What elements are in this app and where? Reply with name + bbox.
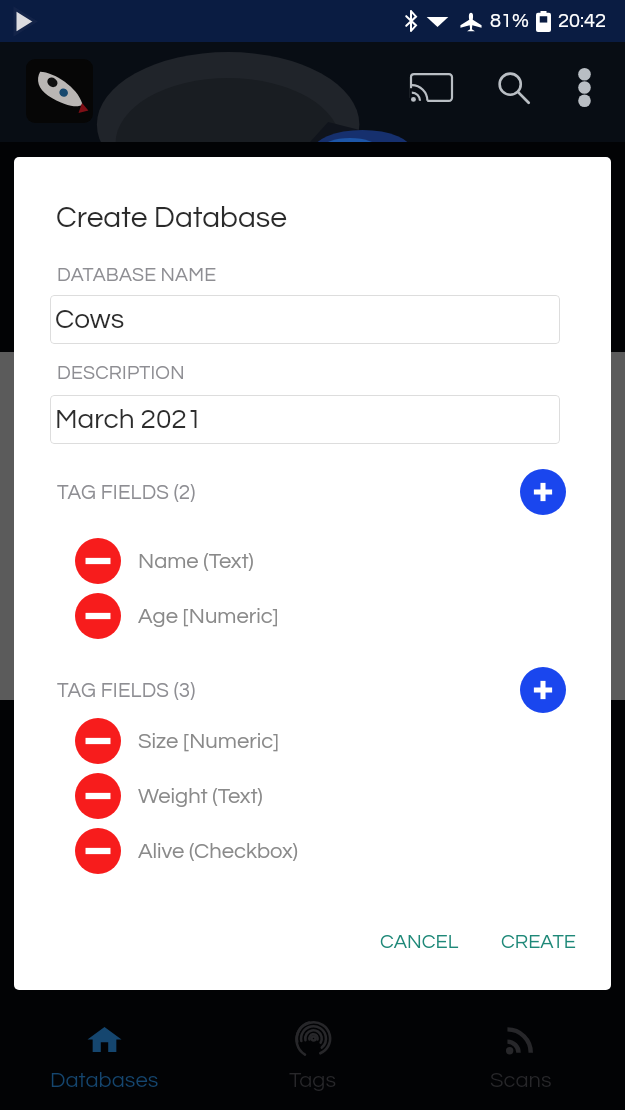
button[interactable]: Name (Text) bbox=[14, 536, 611, 586]
button[interactable]: Tags bbox=[209, 1000, 417, 1110]
staticText: 81% bbox=[490, 11, 529, 32]
staticText: DESCRIPTION bbox=[57, 363, 185, 383]
staticText: Scans bbox=[490, 1069, 552, 1092]
button[interactable]: Add tag field bbox=[520, 469, 566, 515]
staticText: CREATE bbox=[501, 932, 576, 953]
button[interactable]: Cows bbox=[50, 295, 560, 344]
button[interactable]: CREATE bbox=[487, 924, 590, 961]
button[interactable]: Databases bbox=[0, 1000, 209, 1110]
button[interactable]: Alive (Checkbox) bbox=[14, 826, 611, 876]
button[interactable]: Size [Numeric] bbox=[14, 716, 611, 766]
staticText: Age [Numeric] bbox=[138, 605, 279, 628]
button[interactable]: March 2021 bbox=[50, 395, 560, 444]
staticText: CANCEL bbox=[380, 932, 459, 953]
button[interactable]: Weight (Text) bbox=[14, 771, 611, 821]
button[interactable]: Search bbox=[489, 63, 537, 111]
button[interactable]: Age [Numeric] bbox=[14, 591, 611, 641]
staticText: Create Database bbox=[56, 202, 287, 233]
button[interactable]: Scans bbox=[417, 1000, 625, 1110]
button[interactable]: More options bbox=[562, 65, 606, 109]
staticText: March 2021 bbox=[55, 405, 203, 434]
button[interactable]: Add tag field bbox=[520, 667, 566, 713]
staticText: Cows bbox=[55, 305, 125, 334]
staticText: DATABASE NAME bbox=[57, 265, 217, 285]
staticText: 20:42 bbox=[558, 11, 607, 32]
staticText: TAG FIELDS (3) bbox=[57, 680, 196, 701]
button[interactable]: Cast bbox=[407, 63, 455, 111]
staticText: Weight (Text) bbox=[138, 785, 263, 808]
staticText: Tags bbox=[289, 1069, 337, 1092]
staticText: Alive (Checkbox) bbox=[138, 840, 298, 863]
button[interactable]: CANCEL bbox=[366, 924, 473, 961]
staticText: Databases bbox=[50, 1069, 159, 1092]
staticText: TAG FIELDS (2) bbox=[57, 482, 196, 503]
staticText: Name (Text) bbox=[138, 550, 254, 573]
staticText: Size [Numeric] bbox=[138, 730, 279, 753]
